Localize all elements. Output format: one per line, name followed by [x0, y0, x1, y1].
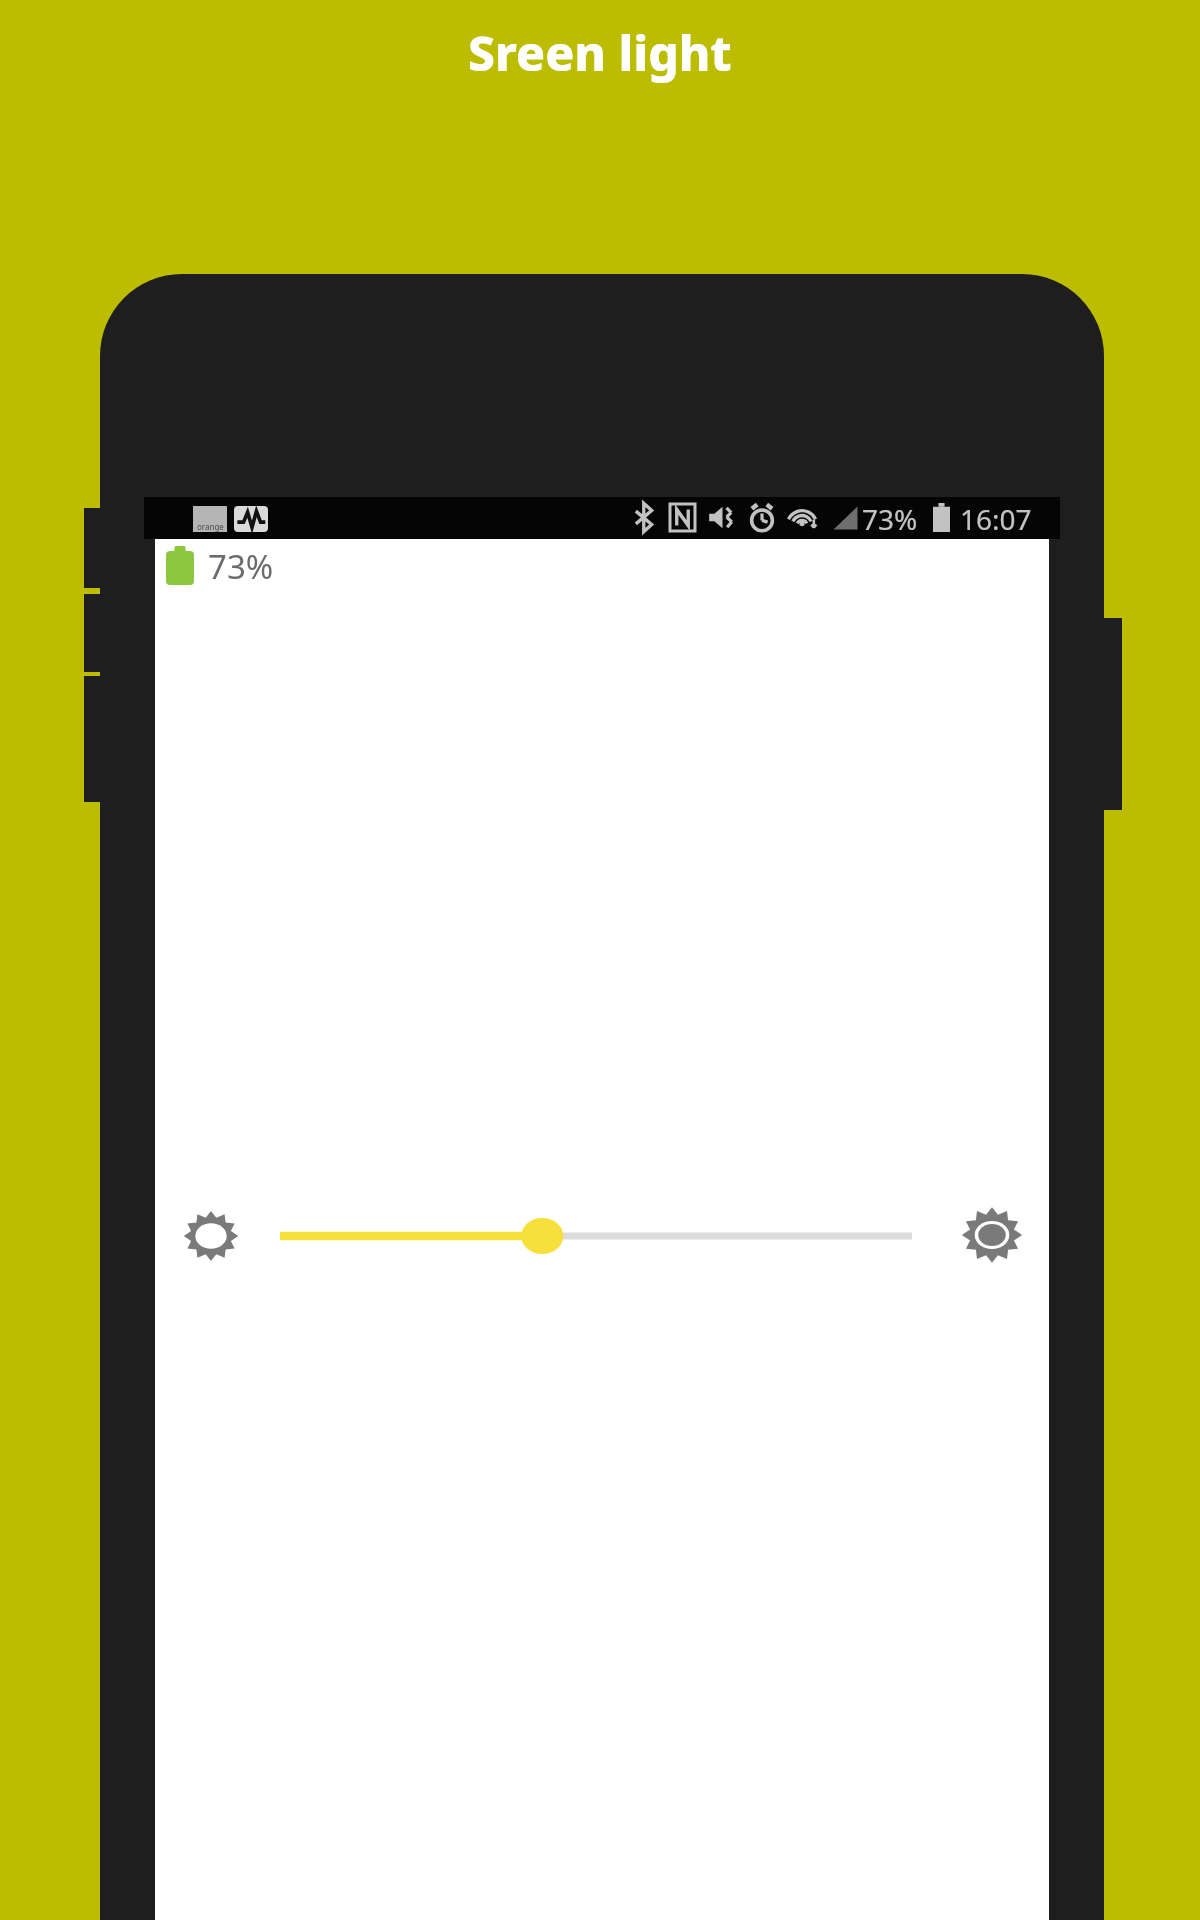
button[interactable]: Brightness slider — [280, 1208, 912, 1264]
staticText: Sreen light — [468, 20, 732, 85]
staticText: 73% — [208, 544, 274, 589]
staticText: orange — [197, 521, 224, 532]
staticText: 73% — [862, 500, 918, 538]
button[interactable]: Dim brightness — [182, 1207, 240, 1265]
staticText: 16:07 — [960, 500, 1032, 538]
button[interactable]: Full brightness — [960, 1203, 1024, 1267]
